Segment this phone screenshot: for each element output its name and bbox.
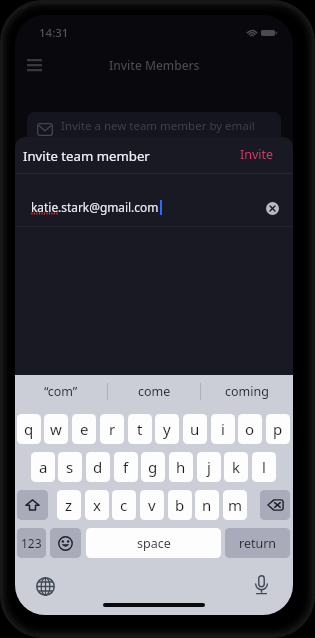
button[interactable]: b — [168, 490, 192, 520]
button[interactable]: Shift — [17, 490, 48, 520]
button[interactable]: t — [128, 414, 152, 444]
staticText: e — [80, 419, 89, 439]
staticText: Invite team member — [23, 147, 150, 165]
staticText: space — [137, 535, 171, 552]
button[interactable]: k — [224, 452, 248, 482]
staticText: katie.stark@gmail.com — [31, 199, 159, 215]
button[interactable]: Invite — [226, 139, 288, 169]
button[interactable]: coming — [201, 375, 293, 408]
staticText: c — [120, 495, 128, 515]
button[interactable]: w — [44, 414, 68, 444]
button[interactable]: l — [252, 452, 276, 482]
button[interactable]: “com” — [15, 375, 107, 408]
staticText: s — [66, 457, 74, 477]
button[interactable]: i — [211, 414, 235, 444]
staticText: h — [176, 457, 186, 477]
staticText: x — [93, 495, 101, 515]
button[interactable]: return — [225, 528, 290, 558]
staticText: “com” — [44, 383, 78, 400]
button[interactable]: y — [155, 414, 179, 444]
staticText: p — [273, 419, 283, 439]
staticText: v — [148, 495, 156, 515]
staticText: Invite Members — [109, 57, 200, 73]
button[interactable]: f — [114, 452, 138, 482]
staticText: t — [137, 419, 143, 439]
staticText: j — [207, 457, 211, 477]
staticText: n — [202, 495, 212, 515]
button[interactable]: a — [31, 452, 55, 482]
staticText: coming — [225, 383, 269, 400]
staticText: d — [93, 457, 103, 477]
staticText: Invite a new team member by email — [61, 118, 255, 134]
button[interactable]: Emoji — [50, 528, 81, 558]
staticText: i — [221, 419, 225, 439]
button[interactable]: s — [58, 452, 82, 482]
button[interactable]: n — [195, 490, 219, 520]
button[interactable]: 123 — [17, 528, 46, 558]
button[interactable]: h — [169, 452, 193, 482]
staticText: return — [239, 535, 277, 552]
button[interactable]: z — [57, 490, 81, 520]
button[interactable]: Change keyboard — [36, 577, 55, 596]
staticText: g — [148, 457, 158, 477]
staticText: 123 — [21, 535, 42, 551]
staticText: Invite — [240, 146, 274, 163]
staticText: o — [245, 419, 255, 439]
button[interactable]: e — [72, 414, 96, 444]
button[interactable]: x — [85, 490, 109, 520]
button[interactable]: u — [183, 414, 207, 444]
staticText: y — [163, 419, 171, 439]
button[interactable]: c — [112, 490, 136, 520]
button[interactable]: m — [223, 490, 247, 520]
staticText: w — [50, 419, 62, 439]
button[interactable]: come — [108, 375, 200, 408]
button[interactable]: o — [238, 414, 262, 444]
button[interactable]: q — [17, 414, 41, 444]
button[interactable]: v — [140, 490, 164, 520]
button[interactable]: Dictate — [255, 575, 268, 595]
staticText: r — [109, 419, 116, 439]
button[interactable]: Invite a new team member by email — [27, 112, 281, 147]
button[interactable]: r — [100, 414, 124, 444]
button[interactable]: d — [86, 452, 110, 482]
staticText: m — [228, 495, 243, 515]
staticText: a — [39, 457, 48, 477]
staticText: z — [65, 495, 73, 515]
staticText: u — [190, 419, 200, 439]
button[interactable]: j — [197, 452, 221, 482]
button[interactable]: Clear text — [266, 202, 279, 215]
button[interactable]: space — [86, 528, 221, 558]
button[interactable]: p — [266, 414, 290, 444]
staticText: b — [175, 495, 185, 515]
staticText: q — [24, 419, 34, 439]
staticText: k — [232, 457, 241, 477]
staticText: f — [123, 457, 129, 477]
button[interactable]: Backspace — [260, 490, 290, 520]
button[interactable]: g — [141, 452, 165, 482]
staticText: 14:31 — [39, 25, 69, 41]
staticText: come — [138, 383, 171, 400]
staticText: l — [262, 457, 266, 477]
